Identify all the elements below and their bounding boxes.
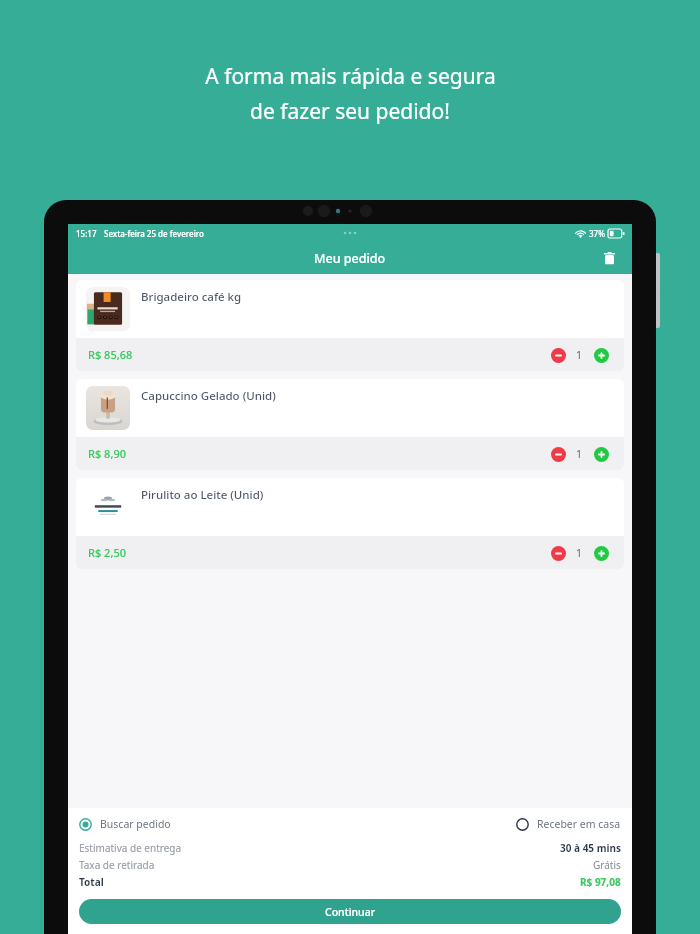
button[interactable]: Aumentar quantidade xyxy=(590,542,612,564)
staticText: 37% xyxy=(589,228,605,239)
staticText: 15:17 xyxy=(76,228,97,239)
staticText: Brigadeiro café kg xyxy=(141,289,242,305)
button[interactable]: Buscar pedido xyxy=(79,817,171,831)
button[interactable]: Diminuir quantidade xyxy=(547,542,569,564)
staticText: Continuar xyxy=(325,905,376,919)
staticText: A forma mais rápida e segura xyxy=(205,62,496,91)
button[interactable]: Receber em casa xyxy=(516,817,621,831)
staticText: 1 xyxy=(576,546,583,560)
staticText: Capuccino Gelado (Unid) xyxy=(141,388,276,404)
button[interactable]: Continuar xyxy=(79,899,621,924)
staticText: 1 xyxy=(576,447,583,461)
button[interactable]: Diminuir quantidade xyxy=(547,443,569,465)
staticText: Pirulito ao Leite (Unid) xyxy=(141,487,264,503)
staticText: 30 à 45 mins xyxy=(560,841,621,855)
button[interactable]: Brigadeiro café kg xyxy=(76,280,624,371)
button[interactable]: Capuccino Gelado (Unid) xyxy=(76,379,624,470)
button[interactable]: Diminuir quantidade xyxy=(547,344,569,366)
staticText: R$ 85,68 xyxy=(88,347,133,362)
staticText: Receber em casa xyxy=(537,817,621,831)
staticText: Total xyxy=(79,875,104,889)
staticText: R$ 97,08 xyxy=(580,875,621,889)
staticText: 1 xyxy=(576,348,583,362)
button[interactable]: Esvaziar pedido xyxy=(596,245,622,271)
staticText: Taxa de retirada xyxy=(79,858,155,872)
staticText: R$ 2,50 xyxy=(88,545,126,560)
staticText: R$ 8,90 xyxy=(88,446,126,461)
staticText: Estimativa de entrega xyxy=(79,841,182,855)
staticText: de fazer seu pedido! xyxy=(250,97,450,126)
button[interactable]: Aumentar quantidade xyxy=(590,443,612,465)
staticText: Meu pedido xyxy=(314,250,386,267)
staticText: Buscar pedido xyxy=(100,817,171,831)
staticText: Sexta-feira 25 de fevereiro xyxy=(104,228,204,239)
button[interactable]: Pirulito ao Leite (Unid) xyxy=(76,478,624,569)
staticText: Grátis xyxy=(593,858,621,872)
button[interactable]: Aumentar quantidade xyxy=(590,344,612,366)
